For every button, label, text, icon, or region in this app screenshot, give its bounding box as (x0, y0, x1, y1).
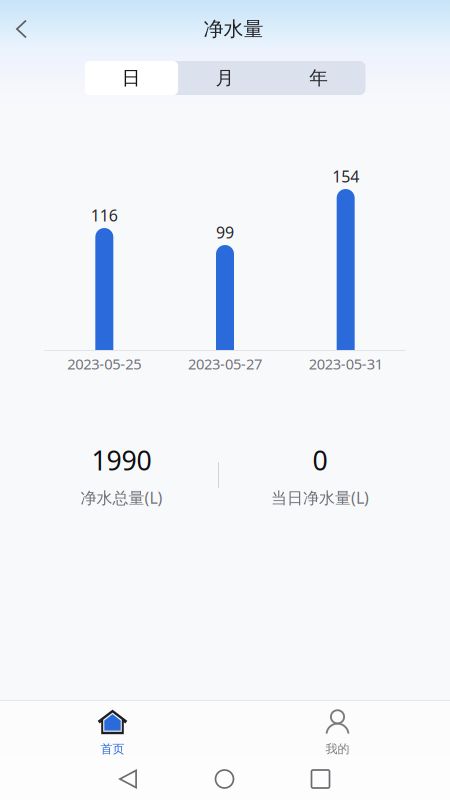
staticText: 2023-05-31 (309, 354, 383, 373)
staticText: 0 (312, 442, 327, 478)
staticText: 1990 (91, 442, 151, 478)
staticText: 首页 (100, 742, 124, 756)
staticText: 日 (122, 66, 141, 89)
button[interactable]: Home (176, 758, 273, 800)
button[interactable]: 日 (84, 61, 178, 95)
staticText: 2023-05-25 (67, 354, 141, 373)
staticText: 净水量 (203, 17, 263, 41)
staticText: 我的 (325, 742, 349, 756)
staticText: 月 (215, 66, 234, 89)
staticText: 净水总量(L) (80, 487, 162, 508)
staticText: 99 (216, 222, 234, 243)
staticText: 年 (309, 66, 328, 89)
button[interactable]: Back (80, 758, 176, 800)
button[interactable]: Recent apps (273, 758, 368, 800)
button[interactable]: 年 (272, 61, 366, 95)
staticText: 当日净水量(L) (271, 487, 369, 508)
staticText: 2023-05-27 (188, 354, 262, 373)
staticText: 154 (332, 166, 359, 187)
button[interactable]: 月 (178, 61, 272, 95)
button[interactable]: Back (0, 4, 44, 53)
button[interactable]: 我的 (225, 698, 450, 761)
button[interactable]: 首页 (0, 698, 225, 761)
staticText: 116 (91, 205, 118, 226)
